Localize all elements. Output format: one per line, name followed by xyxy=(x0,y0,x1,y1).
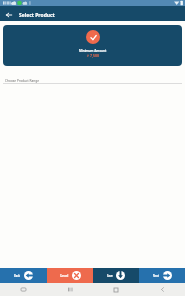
button[interactable]: Save xyxy=(93,268,139,283)
button[interactable]: Back xyxy=(139,283,185,296)
staticText: Select Product xyxy=(19,12,55,19)
staticText: Choose Product Range xyxy=(5,79,40,83)
button[interactable]: Recent apps xyxy=(47,283,93,296)
staticText: Minimum Amount xyxy=(79,49,107,53)
staticText: Save xyxy=(107,274,113,277)
button[interactable]: Hide keyboard xyxy=(0,283,47,296)
button[interactable]: Cancel xyxy=(47,268,93,283)
staticText: Back xyxy=(14,274,21,277)
button[interactable]: Next xyxy=(139,268,185,283)
staticText: Cancel xyxy=(60,274,69,277)
staticText: Next xyxy=(153,274,160,277)
staticText: ₹ 7,500 xyxy=(87,53,99,58)
button[interactable]: Navigate up xyxy=(1,7,16,22)
button[interactable]: Back xyxy=(0,268,47,283)
button[interactable]: Home xyxy=(93,283,139,296)
button[interactable]: Minimum Amount xyxy=(3,25,182,66)
